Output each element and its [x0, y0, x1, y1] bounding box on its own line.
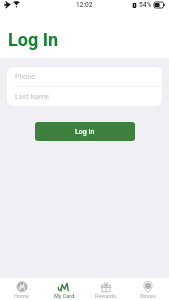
- staticText: 12:02: [76, 1, 93, 9]
- staticText: 54%: [139, 1, 152, 9]
- staticText: Last Name: [15, 93, 49, 101]
- button[interactable]: Log In: [35, 122, 135, 141]
- staticText: Home: [14, 293, 29, 299]
- button[interactable]: Phone: [7, 67, 162, 86]
- button[interactable]: Rewards: [85, 278, 127, 300]
- staticText: Rewards: [95, 293, 117, 299]
- staticText: Log In: [8, 29, 59, 50]
- button[interactable]: My Card: [43, 278, 85, 300]
- staticText: Log In: [75, 128, 95, 136]
- staticText: Phone: [15, 73, 35, 81]
- button[interactable]: Stores: [127, 278, 169, 300]
- staticText: My Card: [54, 293, 75, 299]
- button[interactable]: Home: [0, 278, 43, 300]
- button[interactable]: Last Name: [7, 87, 162, 106]
- staticText: Stores: [140, 293, 156, 299]
